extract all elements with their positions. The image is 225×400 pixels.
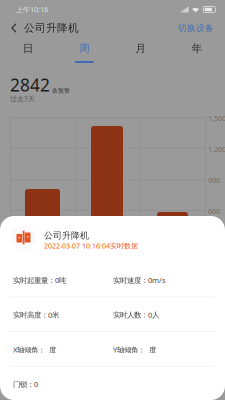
staticText: 实时起重量：0吨	[13, 275, 66, 285]
staticText: 上午10:16	[16, 4, 48, 14]
staticText: 公司升降机	[44, 230, 89, 241]
button[interactable]: 公司升降机	[0, 17, 87, 39]
staticText: 周	[79, 42, 90, 55]
staticText: 过去7天	[10, 94, 35, 103]
staticText: 年	[191, 42, 202, 55]
button[interactable]: 周	[56, 36, 112, 66]
button[interactable]: 日	[0, 36, 56, 66]
staticText: 实时速度：0m/s	[113, 275, 166, 285]
staticText: 600	[208, 206, 220, 216]
staticText: 900	[208, 175, 220, 185]
staticText: 实时高度：0米	[13, 310, 59, 320]
staticText: 2022-03-07 10:16:04实时数据	[44, 241, 138, 250]
button[interactable]: 切换设备	[178, 17, 225, 39]
staticText: 1,200	[208, 144, 225, 154]
staticText: 月	[135, 42, 146, 55]
staticText: 实时人数：0人	[113, 310, 159, 320]
button[interactable]: 年	[169, 36, 225, 66]
staticText: 2842	[10, 73, 50, 97]
staticText: 门锁：0	[13, 379, 38, 389]
button[interactable]: 月	[112, 36, 169, 66]
staticText: 公司升降机	[24, 21, 79, 35]
staticText: X轴倾角： 度	[13, 344, 56, 355]
staticText: 日	[23, 42, 34, 55]
staticText: 切换设备	[178, 22, 214, 33]
staticText: Y轴倾角： 度	[113, 344, 156, 355]
staticText: 1,500	[208, 113, 225, 123]
staticText: 条预警	[52, 87, 70, 95]
button[interactable]: 公司升降机	[0, 216, 225, 260]
